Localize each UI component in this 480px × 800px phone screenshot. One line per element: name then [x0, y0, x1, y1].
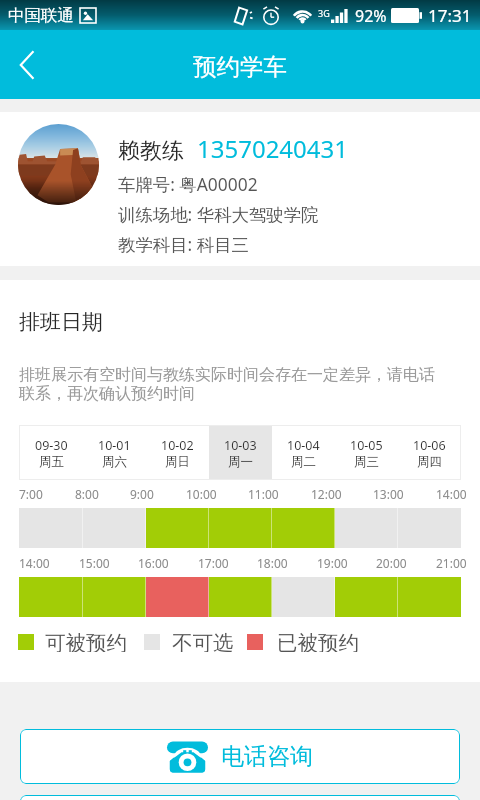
button[interactable]: 10-06 — [398, 425, 461, 480]
staticText: 车牌号: 粤A00002 — [118, 172, 258, 196]
staticText: 周一 — [228, 454, 253, 470]
staticText: 已被预约 — [277, 630, 359, 652]
staticText: 15:00 — [79, 555, 110, 571]
staticText: 19:00 — [317, 555, 348, 571]
button[interactable]: 10-04 — [272, 425, 335, 480]
staticText: 预约学车 — [193, 52, 287, 82]
button[interactable] — [209, 508, 272, 548]
staticText: 09-30 — [35, 437, 68, 454]
staticText: 周四 — [417, 454, 442, 470]
button[interactable]: 电话咨询 — [20, 729, 460, 784]
staticText: 10-05 — [350, 437, 383, 454]
staticText: 周六 — [102, 454, 127, 470]
staticText: 17:31 — [428, 4, 472, 27]
staticText: 14:00 — [19, 555, 50, 571]
staticText: 10-02 — [161, 437, 194, 454]
staticText: 14:00 — [436, 486, 467, 502]
staticText: 3G — [318, 7, 330, 19]
staticText: 可被预约 — [45, 630, 127, 652]
staticText: 10-06 — [413, 437, 446, 454]
staticText: 排班展示有空时间与教练实际时间会存在一定差异，请电话 联系，再次确认预约时间 — [19, 365, 435, 404]
button[interactable]: 10-02 — [146, 425, 209, 480]
staticText: 周五 — [39, 454, 64, 470]
button[interactable] — [272, 508, 335, 548]
button[interactable]: 10-01 — [83, 425, 146, 480]
button[interactable] — [20, 795, 460, 800]
button[interactable] — [146, 577, 209, 617]
staticText: 13570240431 — [197, 132, 349, 165]
staticText: 10-03 — [224, 437, 257, 454]
button[interactable] — [209, 577, 272, 617]
staticText: 10-04 — [287, 437, 320, 454]
staticText: 10:00 — [186, 486, 217, 502]
staticText: 7:00 — [19, 486, 43, 502]
staticText: 21:00 — [436, 555, 467, 571]
staticText: 10-01 — [98, 437, 131, 454]
staticText: 13:00 — [373, 486, 404, 502]
staticText: 92% — [355, 5, 387, 27]
button[interactable] — [19, 577, 83, 617]
staticText: 中国联通 — [8, 5, 74, 26]
button[interactable]: 09-30 — [19, 425, 83, 480]
staticText: 16:00 — [138, 555, 169, 571]
staticText: 11:00 — [248, 486, 279, 502]
button[interactable]: 10-05 — [335, 425, 398, 480]
button[interactable] — [335, 577, 398, 617]
staticText: 20:00 — [376, 555, 407, 571]
staticText: 周日 — [165, 454, 190, 470]
button[interactable]: 10-03 — [209, 425, 272, 480]
staticText: 教学科目: 科目三 — [118, 232, 249, 256]
staticText: 8:00 — [75, 486, 99, 502]
button[interactable]: Back — [4, 30, 50, 99]
staticText: 赖教练 — [118, 137, 184, 165]
staticText: 17:00 — [198, 555, 229, 571]
button[interactable]: 不可选 — [144, 630, 234, 652]
button[interactable]: 可被预约 — [18, 630, 127, 652]
staticText: 周三 — [354, 454, 379, 470]
button[interactable]: 已被预约 — [247, 630, 359, 652]
staticText: 12:00 — [311, 486, 342, 502]
staticText: 不可选 — [172, 630, 234, 652]
button[interactable] — [146, 508, 209, 548]
staticText: 电话咨询 — [221, 742, 313, 771]
staticText: 18:00 — [257, 555, 288, 571]
staticText: 排班日期 — [19, 309, 103, 335]
staticText: 9:00 — [130, 486, 154, 502]
staticText: 周二 — [291, 454, 316, 470]
staticText: 训练场地: 华科大驾驶学院 — [118, 202, 319, 226]
button[interactable] — [83, 577, 146, 617]
